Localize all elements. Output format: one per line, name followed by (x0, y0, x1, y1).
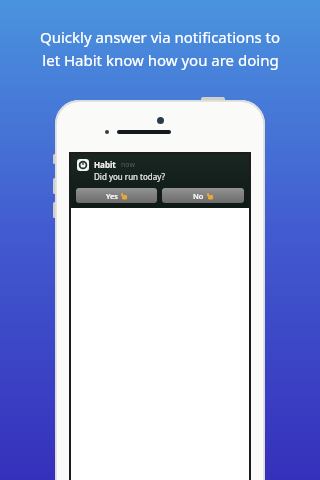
staticText: Habit (94, 159, 116, 170)
button[interactable]: No (162, 188, 244, 203)
staticText: Yes (106, 191, 118, 201)
staticText: now (121, 160, 135, 170)
staticText: Did you run today? (94, 171, 165, 182)
staticText: let Habit know how you are doing (42, 50, 279, 70)
staticText: Quickly answer via notifications to (40, 27, 280, 47)
other: Habit app icon (77, 159, 89, 171)
button[interactable]: Yes (76, 188, 157, 203)
staticText: No (193, 191, 204, 201)
button[interactable]: Habit app icon (71, 154, 249, 208)
